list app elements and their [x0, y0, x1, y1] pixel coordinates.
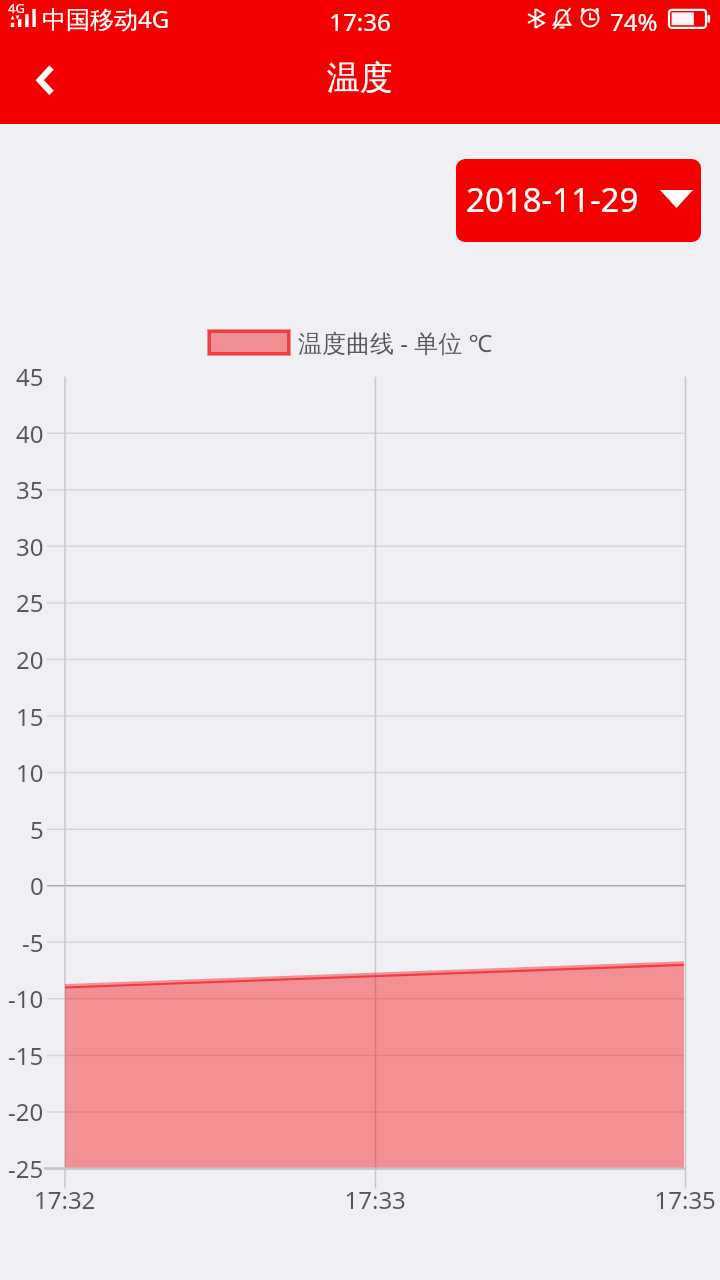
staticText: 17:36 [0, 5, 720, 38]
staticText: 4G [8, 0, 25, 17]
staticText: 温度 [327, 57, 393, 99]
button[interactable]: 2018-11-29 [456, 159, 701, 242]
staticText: 74% [610, 5, 658, 38]
staticText: 中国移动4G [42, 2, 170, 35]
staticText: 温度曲线 - 单位 ℃ [298, 326, 493, 359]
staticText: 2018-11-29 [466, 177, 639, 222]
button[interactable]: Back [14, 50, 72, 108]
